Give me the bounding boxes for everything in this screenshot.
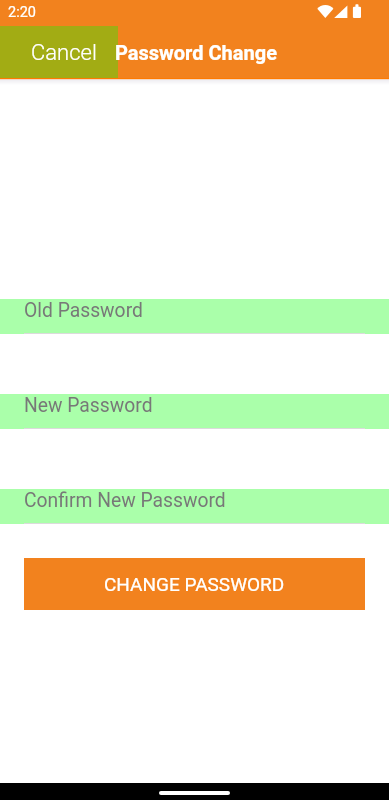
staticText: New Password (24, 394, 153, 417)
button[interactable]: CHANGE PASSWORD (24, 558, 365, 610)
staticText: Old Password (24, 299, 143, 322)
staticText: Confirm New Password (24, 489, 226, 512)
button[interactable]: Confirm New Password (0, 489, 389, 524)
button[interactable]: Old Password (0, 299, 389, 334)
button[interactable]: New Password (0, 394, 389, 429)
staticText: Password Change (115, 41, 277, 64)
staticText: CHANGE PASSWORD (104, 573, 285, 595)
staticText: Cancel (31, 40, 97, 66)
button[interactable]: Cancel (0, 26, 118, 80)
staticText: 2:20 (8, 4, 36, 21)
other: Status icons (317, 4, 362, 18)
